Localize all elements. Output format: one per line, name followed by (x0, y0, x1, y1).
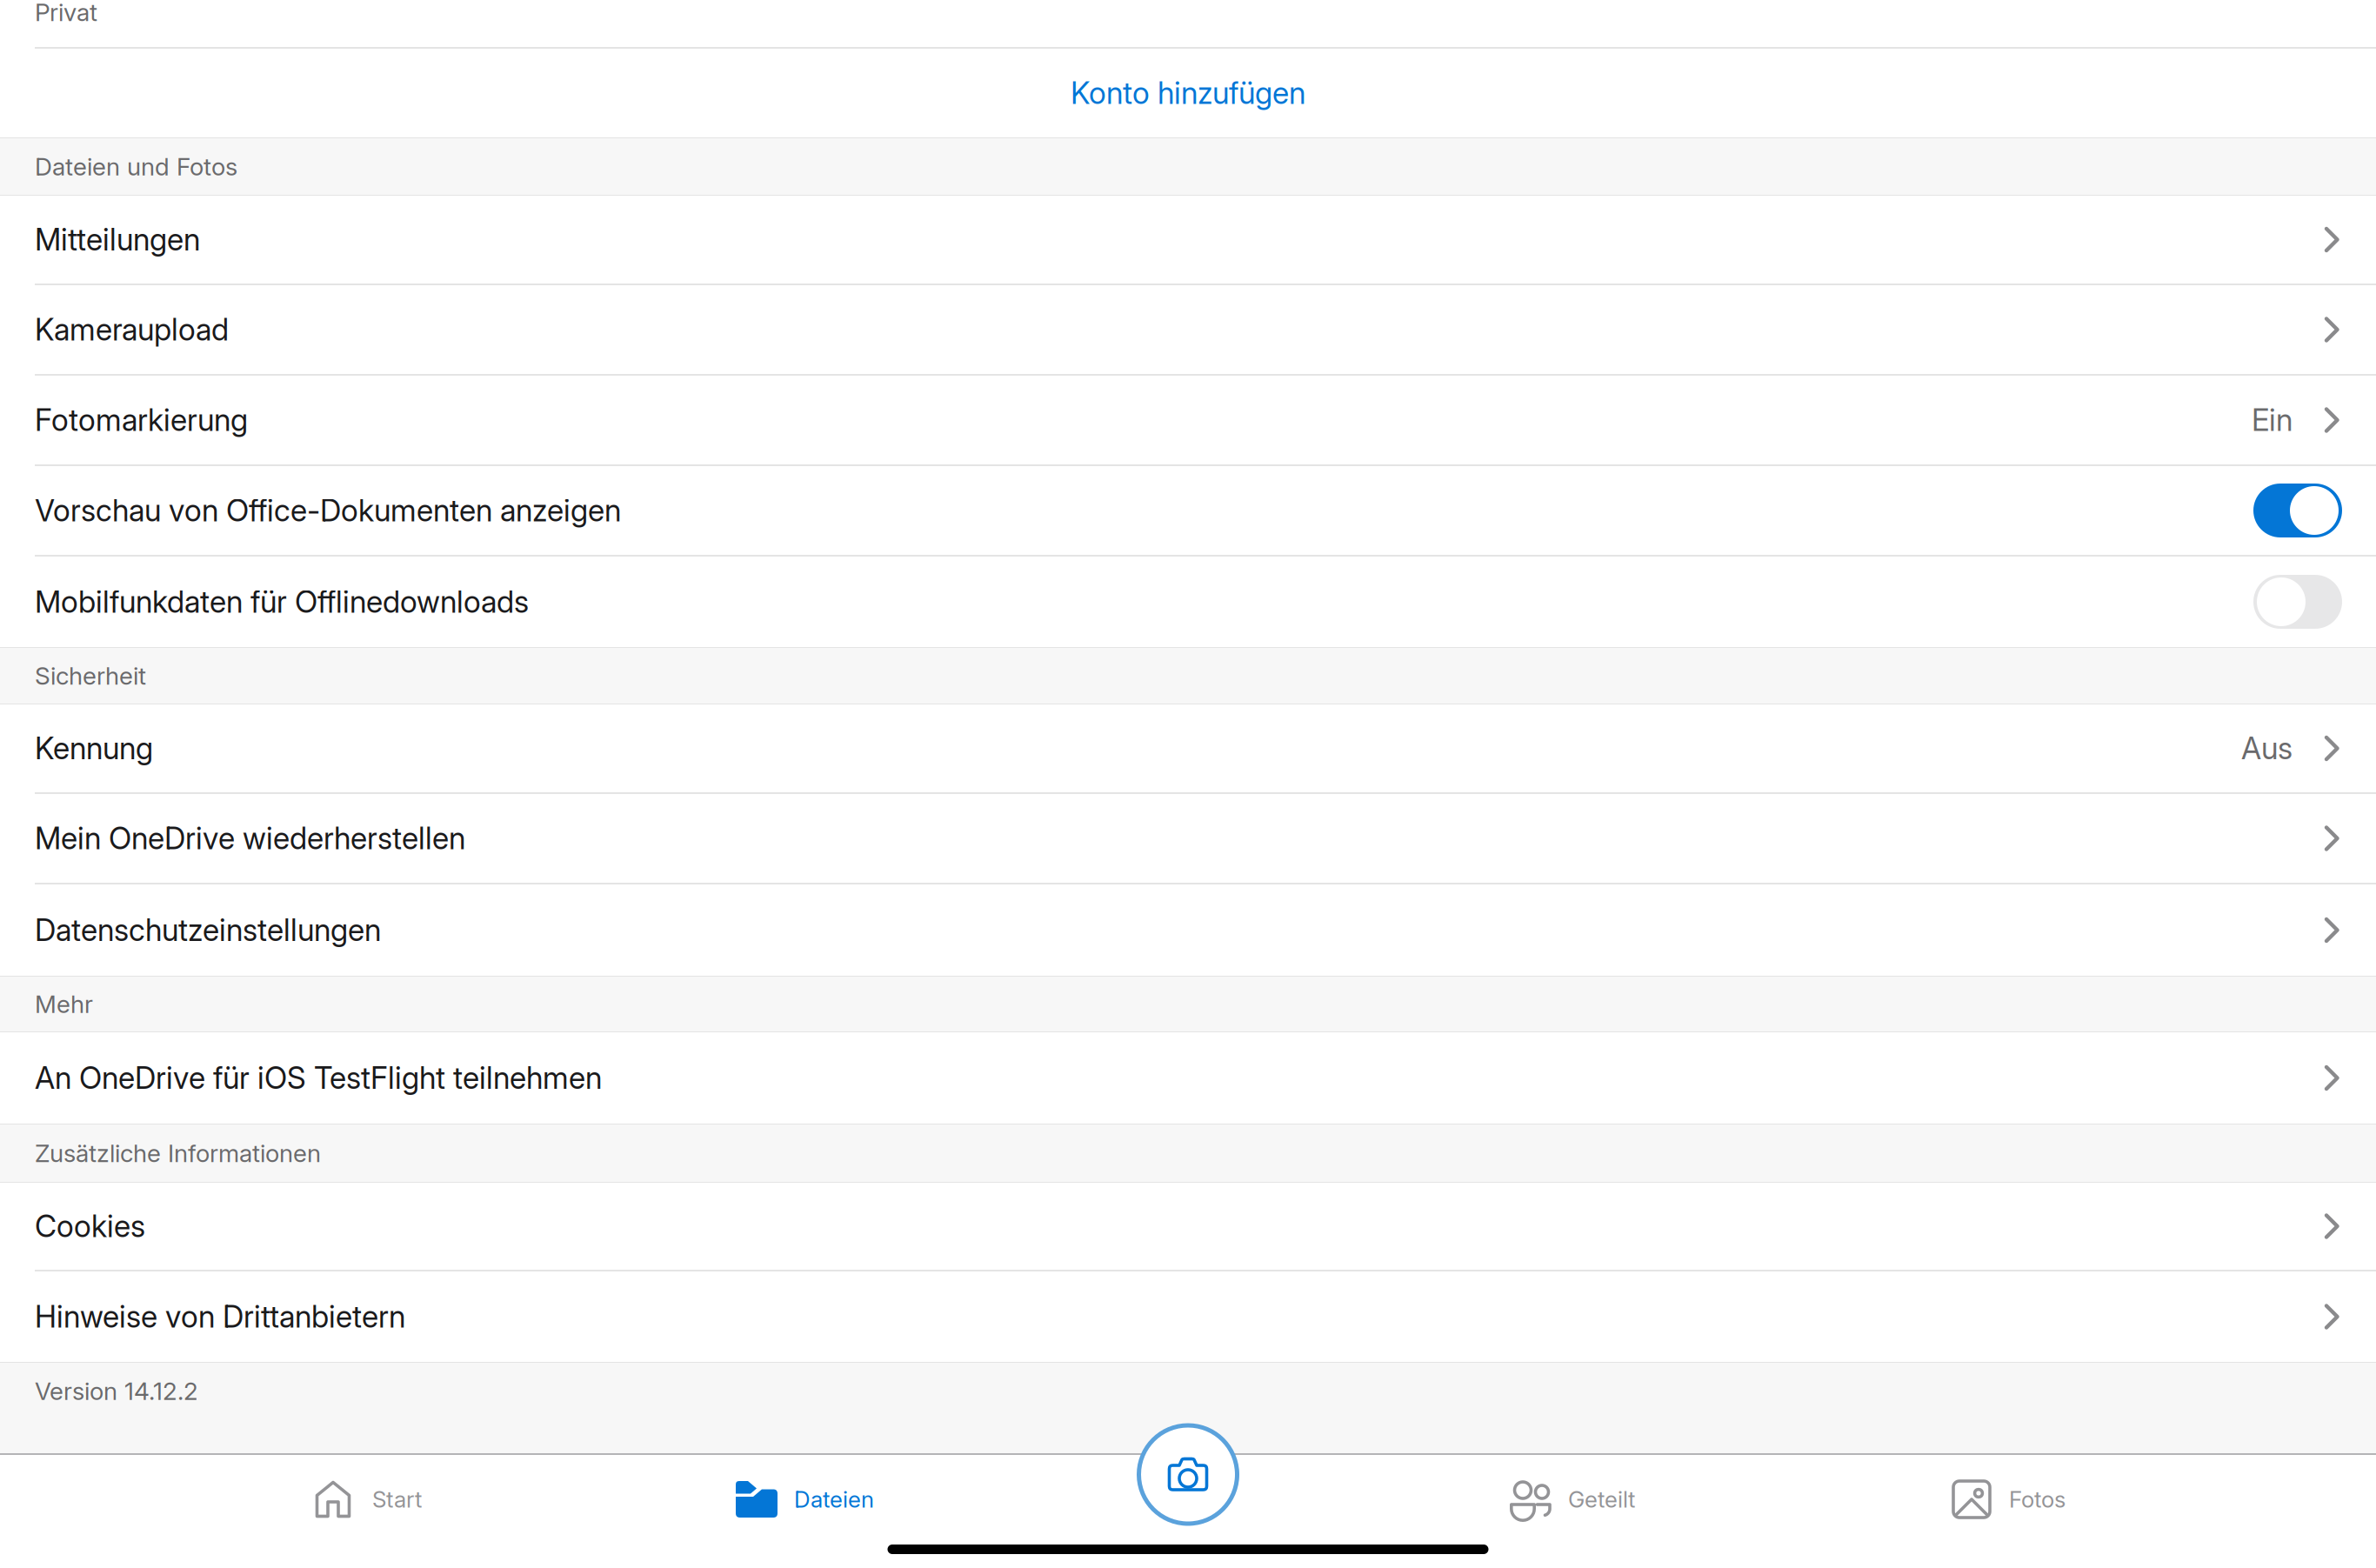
button[interactable]: Kennung (0, 704, 2376, 792)
button[interactable]: Dateien (475, 1455, 950, 1544)
button[interactable]: Fotos (1901, 1455, 2376, 1544)
button[interactable]: Mitteilungen (0, 196, 2376, 284)
button[interactable]: Mein OneDrive wiederherstellen (0, 794, 2376, 883)
staticText: Kameraupload (35, 311, 229, 348)
staticText: Dateien (794, 1486, 874, 1513)
button[interactable]: Kamera (1139, 1425, 1237, 1524)
staticText: Fotomarkierung (35, 402, 248, 438)
staticText: Version 14.12.2 (35, 1376, 198, 1406)
staticText: Mein OneDrive wiederherstellen (35, 820, 465, 857)
staticText: Fotos (2009, 1486, 2066, 1513)
staticText: Mehr (35, 989, 93, 1019)
staticText: Privat (35, 0, 97, 27)
staticText: Dateien und Fotos (35, 152, 237, 181)
button[interactable]: Kameraupload (0, 285, 2376, 374)
staticText: Mobilfunkdaten für Offlinedownloads (35, 584, 529, 620)
staticText: Aus (2241, 730, 2293, 767)
button[interactable]: Konto hinzufügen (0, 49, 2376, 137)
button[interactable]: Mobilfunkdaten für Offlinedownloads (0, 557, 2376, 647)
staticText: Sicherheit (35, 661, 146, 691)
staticText: Konto hinzufügen (1071, 75, 1305, 111)
staticText: Vorschau von Office-Dokumenten anzeigen (35, 492, 621, 529)
staticText: Hinweise von Drittanbietern (35, 1298, 405, 1335)
staticText: Ein (2252, 402, 2293, 438)
button[interactable]: Fotomarkierung (0, 376, 2376, 464)
staticText: Start (372, 1486, 422, 1513)
button[interactable]: Vorschau von Office-Dokumenten anzeigen (0, 466, 2376, 555)
staticText: An OneDrive für iOS TestFlight teilnehme… (35, 1060, 602, 1096)
button[interactable]: Datenschutzeinstellungen (0, 884, 2376, 976)
staticText: Datenschutzeinstellungen (35, 912, 381, 948)
button[interactable]: Cookies (0, 1183, 2376, 1270)
staticText: Cookies (35, 1208, 145, 1244)
button[interactable]: Geteilt (1426, 1455, 1901, 1544)
button[interactable]: Hinweise von Drittanbietern (0, 1271, 2376, 1362)
staticText: Mitteilungen (35, 221, 200, 258)
staticText: Geteilt (1568, 1486, 1635, 1513)
button[interactable]: An OneDrive für iOS TestFlight teilnehme… (0, 1032, 2376, 1124)
button[interactable]: Start (0, 1455, 475, 1544)
staticText: Kennung (35, 730, 153, 767)
staticText: Zusätzliche Informationen (35, 1138, 321, 1168)
